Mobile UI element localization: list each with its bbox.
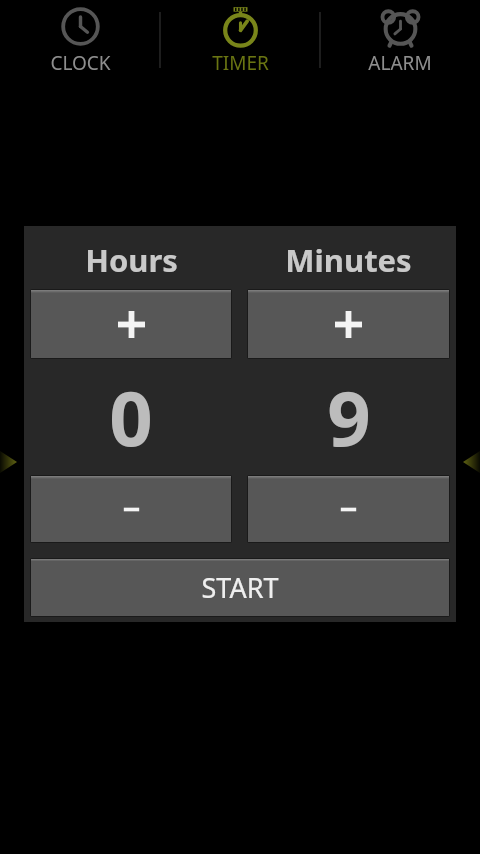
staticText: ALARM <box>368 50 432 76</box>
button[interactable]: Add one hour <box>31 290 231 358</box>
button[interactable]: Add one minute <box>248 290 449 358</box>
button[interactable]: TIMER <box>160 0 320 80</box>
staticText: CLOCK <box>50 50 111 76</box>
staticText: 0 <box>109 365 153 469</box>
staticText: TIMER <box>212 50 269 76</box>
button[interactable]: START <box>31 559 449 616</box>
staticText: START <box>201 569 279 606</box>
button[interactable]: ALARM <box>320 0 480 80</box>
staticText: 9 <box>327 365 371 469</box>
button[interactable]: CLOCK <box>0 0 160 80</box>
staticText: Hours <box>85 239 178 281</box>
button[interactable]: Subtract one hour <box>31 476 231 542</box>
staticText: Minutes <box>285 239 412 281</box>
button[interactable]: Subtract one minute <box>248 476 449 542</box>
